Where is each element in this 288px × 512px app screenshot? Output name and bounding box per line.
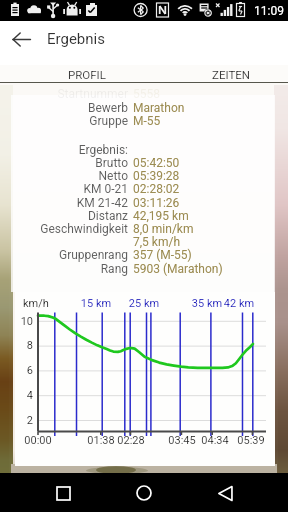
button[interactable]: Back — [3, 21, 40, 58]
staticText: 15 km — [79, 297, 113, 310]
staticText: ZEITEN — [212, 68, 250, 81]
staticText: Marathon — [133, 101, 185, 115]
staticText: Gruppe — [0, 114, 128, 128]
staticText: Ergebnis: — [0, 143, 128, 157]
staticText: 357 (M-55) — [133, 248, 192, 262]
staticText: Startnummer — [0, 87, 128, 101]
staticText: 05:42:50 — [133, 156, 180, 170]
staticText: km/h — [23, 297, 49, 310]
staticText: 5558 — [133, 87, 160, 101]
staticText: 42 km — [222, 297, 256, 310]
staticText: Distanz — [0, 209, 128, 223]
staticText — [0, 235, 128, 249]
staticText: 00:00 — [21, 434, 55, 447]
staticText: Bewerb — [0, 101, 128, 115]
staticText: Gruppenrang — [0, 248, 128, 262]
staticText: 6 — [15, 364, 33, 377]
staticText: 4 — [15, 389, 33, 402]
staticText: 03:45 — [165, 434, 199, 447]
staticText: 5903 (Marathon) — [133, 262, 223, 276]
staticText: KM 0-21 — [0, 182, 128, 196]
staticText: KM 21-42 — [0, 196, 128, 210]
staticText: 2 — [15, 414, 33, 427]
button[interactable]: Recent apps — [45, 475, 81, 511]
staticText: 8,0 min/km — [133, 222, 194, 236]
staticText: 05:39:28 — [133, 169, 180, 183]
staticText: Ergebnis — [47, 30, 105, 48]
staticText: 25 km — [127, 297, 161, 310]
staticText: 05:39 — [234, 434, 268, 447]
staticText: 7,5 km/h — [133, 235, 180, 249]
staticText: Rang — [0, 262, 128, 276]
staticText: 03:11:26 — [133, 196, 180, 210]
staticText: PROFIL — [68, 68, 106, 81]
staticText: 02:28:02 — [133, 182, 180, 196]
staticText: 42,195 km — [133, 209, 189, 223]
button[interactable]: Home — [126, 475, 162, 511]
button[interactable]: ZEITEN — [191, 65, 271, 83]
staticText: Netto — [0, 169, 128, 183]
staticText: 10 — [15, 315, 33, 328]
staticText: Geschwindigkeit — [0, 222, 128, 236]
staticText: 35 km — [190, 297, 224, 310]
staticText: M-55 — [133, 114, 161, 128]
staticText: 02:28 — [114, 434, 148, 447]
staticText: 8 — [15, 339, 33, 352]
button[interactable]: PROFIL — [47, 65, 127, 83]
staticText: 01:38 — [84, 434, 118, 447]
staticText: 11:09 — [254, 4, 284, 18]
button[interactable]: Back — [207, 475, 243, 511]
staticText: 04:34 — [198, 434, 232, 447]
staticText: Brutto — [0, 156, 128, 170]
